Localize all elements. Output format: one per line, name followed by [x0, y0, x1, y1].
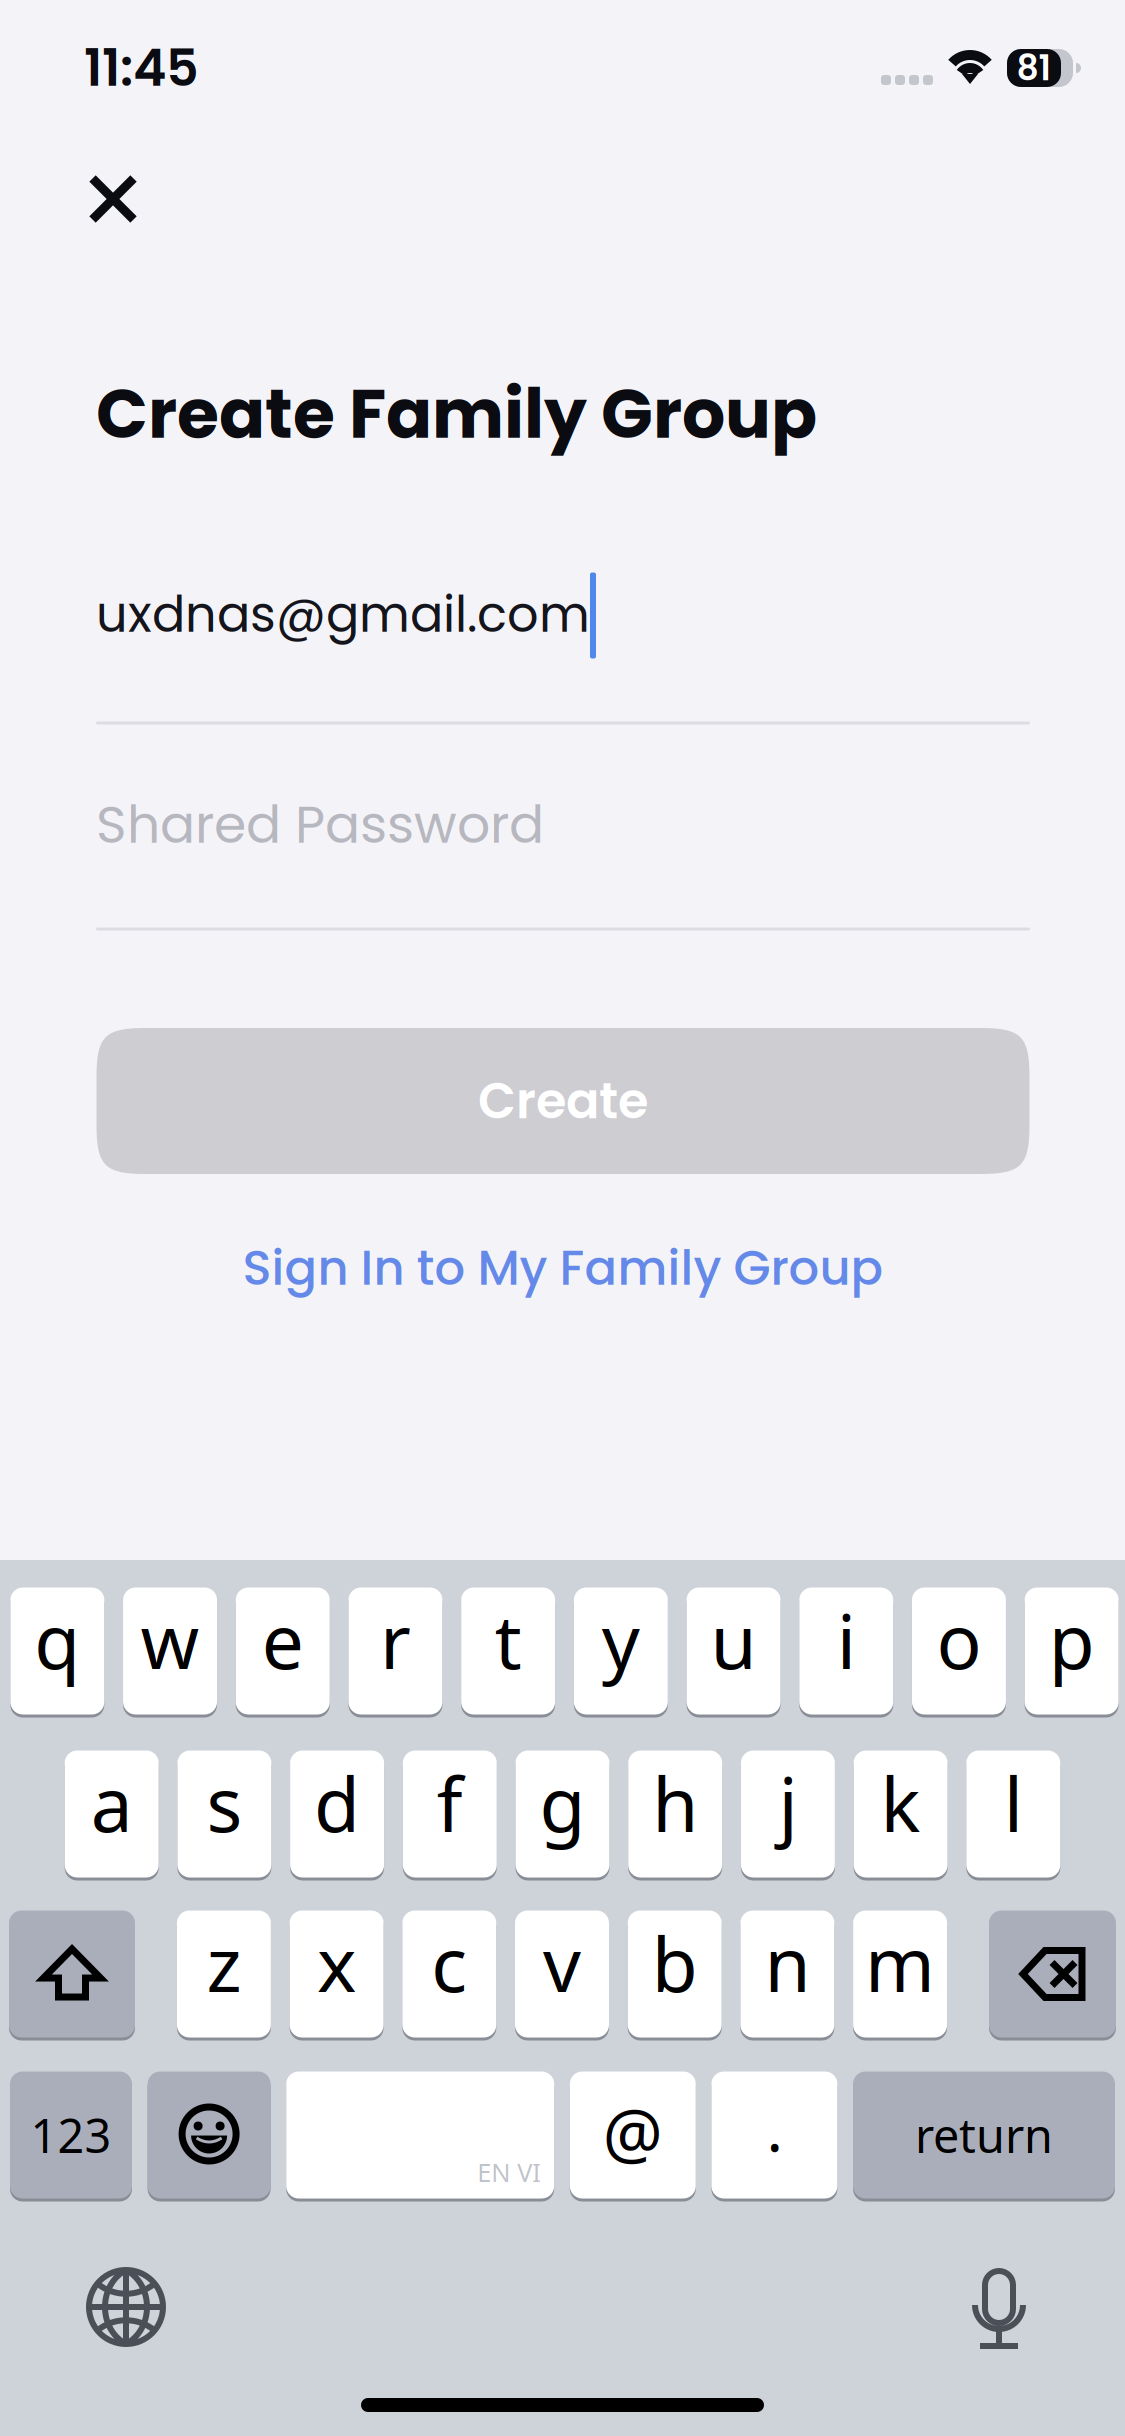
- staticText: u: [711, 1590, 757, 1690]
- staticText: h: [652, 1753, 698, 1853]
- staticText: c: [431, 1913, 467, 2013]
- staticText: uxdnas@gmail.com: [96, 580, 590, 649]
- button[interactable]: Emoji: [148, 2070, 271, 2200]
- staticText: i: [837, 1590, 856, 1690]
- staticText: t: [495, 1590, 522, 1690]
- staticText: f: [437, 1753, 463, 1853]
- button[interactable]: n: [740, 1909, 834, 2039]
- button[interactable]: r: [348, 1586, 442, 1716]
- button[interactable]: Space: [286, 2070, 554, 2200]
- button[interactable]: w: [123, 1586, 217, 1716]
- staticText: x: [317, 1913, 356, 2013]
- button[interactable]: t: [461, 1586, 555, 1716]
- staticText: g: [539, 1753, 585, 1853]
- button[interactable]: g: [515, 1749, 609, 1879]
- button[interactable]: k: [854, 1749, 948, 1879]
- button[interactable]: p: [1025, 1586, 1119, 1716]
- staticText: m: [865, 1913, 935, 2013]
- button[interactable]: c: [402, 1909, 496, 2039]
- button[interactable]: b: [628, 1909, 722, 2039]
- button[interactable]: z: [177, 1909, 271, 2039]
- button[interactable]: x: [290, 1909, 384, 2039]
- button[interactable]: u: [687, 1586, 781, 1716]
- staticText: r: [380, 1590, 411, 1690]
- button[interactable]: @: [570, 2070, 696, 2200]
- staticText: s: [206, 1753, 242, 1853]
- button[interactable]: q: [10, 1586, 104, 1716]
- button[interactable]: e: [236, 1586, 330, 1716]
- button[interactable]: Next keyboard: [71, 2252, 181, 2362]
- button[interactable]: return: [853, 2070, 1115, 2200]
- button[interactable]: h: [628, 1749, 722, 1879]
- staticText: Sign In to My Family Group: [242, 1234, 883, 1302]
- button[interactable]: o: [912, 1586, 1006, 1716]
- staticText: z: [206, 1913, 241, 2013]
- button[interactable]: d: [290, 1749, 384, 1879]
- button[interactable]: Dictate: [944, 2252, 1054, 2362]
- staticText: Shared Password: [96, 788, 544, 861]
- staticText: l: [1004, 1753, 1023, 1853]
- button[interactable]: Sign In to My Family Group: [96, 1224, 1029, 1312]
- button[interactable]: Close: [66, 152, 160, 246]
- button[interactable]: Delete: [989, 1909, 1116, 2039]
- staticText: 123: [30, 2104, 111, 2166]
- staticText: p: [1049, 1590, 1095, 1690]
- button[interactable]: a: [65, 1749, 159, 1879]
- staticText: q: [34, 1590, 80, 1690]
- button[interactable]: s: [177, 1749, 271, 1879]
- button[interactable]: Shift: [9, 1909, 135, 2039]
- staticText: w: [141, 1590, 200, 1690]
- button[interactable]: 123: [10, 2070, 132, 2200]
- staticText: a: [91, 1753, 133, 1853]
- staticText: @: [603, 2088, 663, 2176]
- staticText: y: [602, 1590, 640, 1690]
- button[interactable]: m: [853, 1909, 947, 2039]
- button[interactable]: l: [966, 1749, 1060, 1879]
- button[interactable]: Create: [96, 1028, 1029, 1174]
- staticText: 81: [1016, 44, 1051, 92]
- button[interactable]: y: [574, 1586, 668, 1716]
- staticText: n: [764, 1913, 810, 2013]
- button[interactable]: j: [741, 1749, 835, 1879]
- staticText: k: [881, 1753, 921, 1853]
- staticText: d: [314, 1753, 360, 1853]
- staticText: Create Family Group: [96, 366, 817, 462]
- staticText: 11:45: [84, 32, 199, 103]
- staticText: b: [652, 1913, 698, 2013]
- staticText: j: [778, 1753, 797, 1853]
- staticText: .: [766, 2087, 782, 2169]
- button[interactable]: i: [799, 1586, 893, 1716]
- staticText: e: [262, 1590, 304, 1690]
- button[interactable]: f: [403, 1749, 497, 1879]
- button[interactable]: v: [515, 1909, 609, 2039]
- staticText: return: [915, 2104, 1053, 2166]
- staticText: Create: [478, 1066, 648, 1136]
- button[interactable]: .: [711, 2070, 837, 2200]
- staticText: v: [543, 1913, 581, 2013]
- staticText: o: [936, 1590, 981, 1690]
- staticText: EN VI: [477, 2155, 541, 2189]
